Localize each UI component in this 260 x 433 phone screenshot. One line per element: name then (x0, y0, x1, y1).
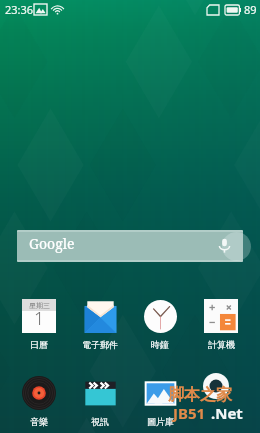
button[interactable]: 電子郵件 (70, 299, 130, 350)
staticText: 視訊 (91, 416, 109, 427)
button[interactable]: Google (17, 230, 243, 262)
button[interactable]: 音樂 (9, 376, 69, 427)
staticText: 89 (244, 2, 257, 17)
staticText: 計算機 (208, 339, 235, 350)
button[interactable]: 星期三 (9, 299, 69, 350)
button[interactable]: 圖片庫 (130, 376, 190, 427)
staticText: 1 (34, 306, 45, 328)
button[interactable]: Voice search (215, 236, 234, 255)
staticText: 脚本之家 (168, 385, 232, 405)
staticText: 日曆 (30, 339, 48, 350)
staticText: 音樂 (30, 416, 48, 427)
button[interactable]: 視訊 (70, 376, 130, 427)
staticText: .Net (211, 403, 243, 423)
staticText: JB51 (173, 403, 206, 423)
staticText: Google (29, 234, 75, 253)
staticText: 電子郵件 (82, 339, 118, 350)
staticText: 圖片庫 (147, 416, 174, 427)
staticText: 23:36 (5, 2, 34, 17)
staticText: 星期三 (29, 301, 50, 310)
button[interactable]: 時鐘 (130, 299, 190, 350)
staticText: 時鐘 (151, 339, 169, 350)
button[interactable]: 計算機 (191, 299, 251, 350)
